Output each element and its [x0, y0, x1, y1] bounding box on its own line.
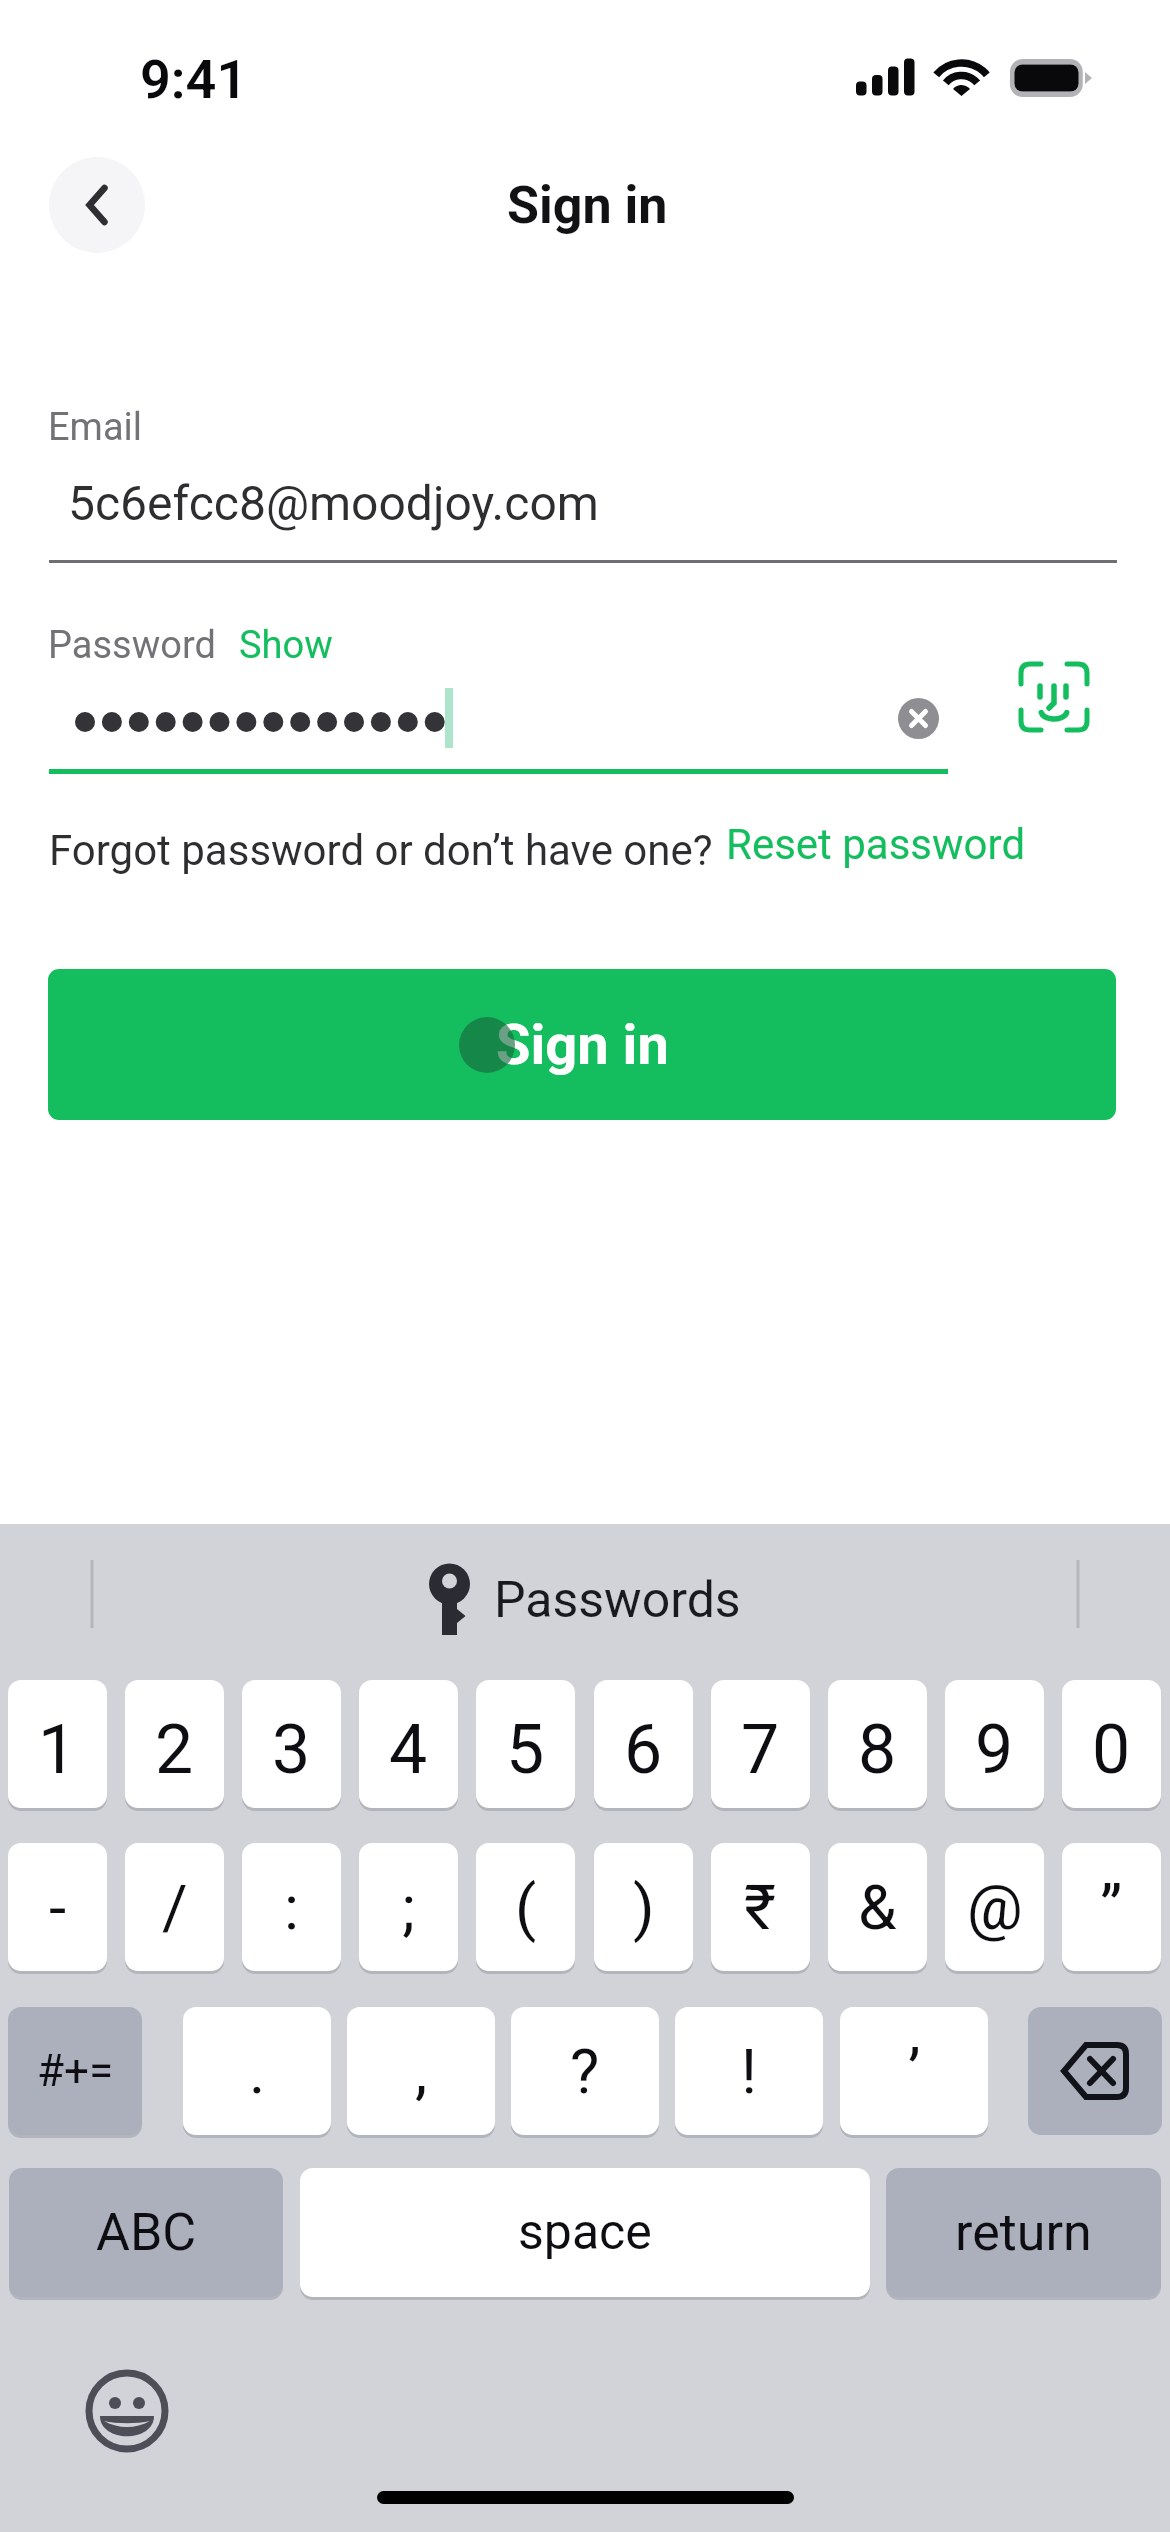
staticText: 2 — [155, 1710, 194, 1790]
button[interactable]: , — [347, 2007, 495, 2135]
button[interactable]: Back — [49, 157, 145, 253]
button[interactable]: @ — [945, 1843, 1044, 1971]
staticText: 0 — [1092, 1710, 1131, 1790]
staticText: : — [284, 1871, 300, 1944]
staticText: ! — [741, 2035, 757, 2108]
staticText: 6 — [624, 1710, 663, 1790]
button[interactable]: Sign in with Face ID — [1018, 661, 1092, 735]
button[interactable]: & — [828, 1843, 927, 1971]
staticText: 7 — [741, 1710, 780, 1790]
staticText: ( — [515, 1871, 537, 1944]
staticText: . — [249, 2035, 266, 2108]
button[interactable]: Backspace — [1028, 2007, 1162, 2135]
button[interactable]: ” — [1062, 1843, 1161, 1971]
button[interactable]: ₹ — [711, 1843, 810, 1971]
staticText: - — [49, 1871, 67, 1944]
button[interactable]: Emoji keyboard — [85, 2369, 169, 2453]
staticText: Reset password — [726, 820, 1026, 869]
staticText: return — [955, 2202, 1092, 2263]
button[interactable]: ! — [675, 2007, 823, 2135]
staticText: #+= — [37, 2045, 114, 2097]
staticText: ABC — [96, 2202, 197, 2263]
staticText: 9:41 — [140, 48, 248, 111]
button[interactable]: 4 — [359, 1680, 458, 1808]
button[interactable]: 6 — [594, 1680, 693, 1808]
button[interactable]: ) — [594, 1843, 693, 1971]
staticText: space — [518, 2203, 652, 2262]
staticText: ’ — [908, 2035, 921, 2108]
staticText: Email — [48, 405, 143, 450]
button[interactable]: Sign in — [48, 969, 1116, 1120]
button[interactable]: . — [183, 2007, 331, 2135]
staticText: @ — [967, 1871, 1023, 1944]
button[interactable]: 1 — [8, 1680, 107, 1808]
button[interactable]: ’ — [840, 2007, 988, 2135]
staticText: Show — [239, 623, 333, 668]
button[interactable]: ( — [476, 1843, 575, 1971]
staticText: ) — [633, 1871, 655, 1944]
staticText: 1 — [38, 1710, 77, 1790]
staticText: ? — [570, 2035, 600, 2108]
staticText: ; — [402, 1871, 416, 1944]
button[interactable]: 3 — [242, 1680, 341, 1808]
button[interactable]: ; — [359, 1843, 458, 1971]
button[interactable]: space — [300, 2168, 870, 2297]
staticText: Sign in — [496, 1012, 669, 1078]
staticText: 9 — [975, 1710, 1014, 1790]
staticText: 5c6efcc8@moodjoy.com — [68, 475, 599, 531]
button[interactable]: Clear password — [898, 698, 939, 739]
staticText: Forgot password or don’t have one? — [49, 826, 713, 875]
button[interactable]: 5 — [476, 1680, 575, 1808]
button[interactable]: ? — [511, 2007, 659, 2135]
button[interactable]: Reset password — [726, 816, 1026, 872]
button[interactable]: - — [8, 1843, 107, 1971]
staticText: , — [415, 2035, 428, 2108]
staticText: Passwords — [494, 1571, 741, 1630]
staticText: 3 — [272, 1710, 311, 1790]
button[interactable]: Passwords — [0, 1540, 1170, 1660]
staticText: ₹ — [744, 1871, 777, 1944]
staticText: 5 — [506, 1710, 545, 1790]
staticText: Sign in — [507, 175, 668, 236]
staticText: 4 — [389, 1710, 428, 1790]
button[interactable]: #+= — [8, 2007, 142, 2135]
staticText: 8 — [858, 1710, 897, 1790]
button[interactable]: 8 — [828, 1680, 927, 1808]
button[interactable]: 9 — [945, 1680, 1044, 1808]
button[interactable]: ABC — [9, 2168, 283, 2297]
button[interactable]: / — [125, 1843, 224, 1971]
staticText: ” — [1100, 1871, 1123, 1944]
button[interactable]: 2 — [125, 1680, 224, 1808]
staticText: Password — [48, 623, 216, 668]
button[interactable]: Show — [239, 617, 339, 665]
staticText: & — [858, 1871, 897, 1944]
button[interactable]: return — [886, 2168, 1161, 2297]
staticText: / — [162, 1871, 188, 1944]
button[interactable]: 7 — [711, 1680, 810, 1808]
button[interactable]: 0 — [1062, 1680, 1161, 1808]
button[interactable]: : — [242, 1843, 341, 1971]
